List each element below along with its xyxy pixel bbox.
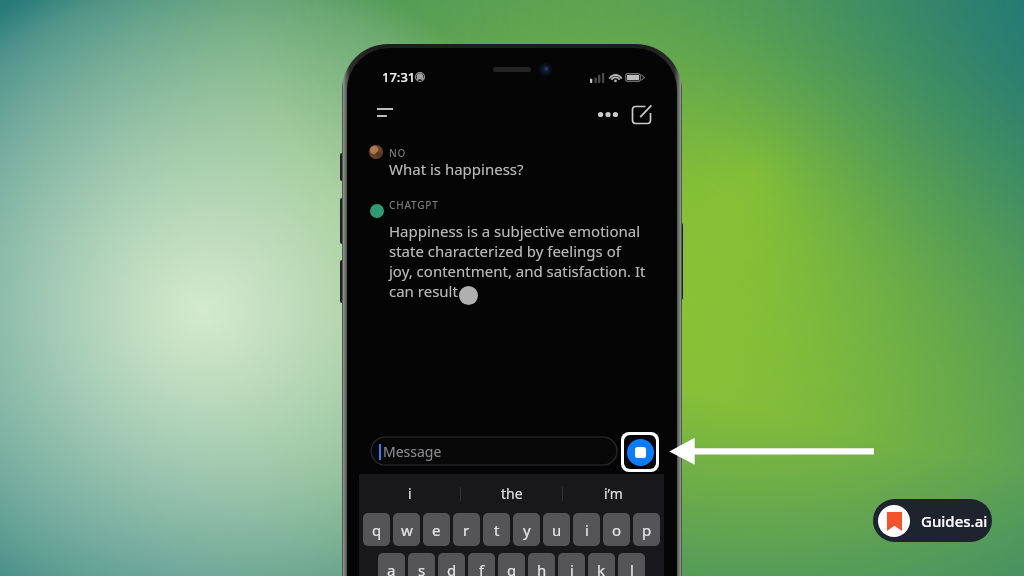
button[interactable]: o — [603, 513, 630, 546]
staticText: the — [501, 484, 523, 503]
button[interactable]: u — [543, 513, 570, 546]
button[interactable]: d — [438, 553, 465, 576]
button[interactable]: s — [408, 553, 435, 576]
staticText: e — [432, 520, 441, 540]
staticText: Guides.ai — [921, 511, 988, 531]
staticText: i — [585, 520, 589, 540]
staticText: can result — [389, 281, 458, 301]
staticText: f — [479, 560, 485, 576]
staticText: i — [408, 484, 412, 503]
button[interactable]: k — [588, 553, 615, 576]
staticText: Happiness is a subjective emotional — [389, 221, 641, 241]
staticText: a — [387, 560, 396, 576]
staticText: state characterized by feelings of — [389, 241, 621, 261]
button[interactable]: e — [423, 513, 450, 546]
staticText: j — [570, 560, 574, 576]
button[interactable]: More options — [594, 102, 622, 126]
staticText: p — [642, 520, 652, 540]
button[interactable]: r — [453, 513, 480, 546]
button[interactable]: j — [558, 553, 585, 576]
staticText: o — [612, 520, 622, 540]
button[interactable]: p — [633, 513, 660, 546]
button[interactable]: i — [359, 474, 460, 513]
staticText: h — [537, 560, 547, 576]
button[interactable]: t — [483, 513, 510, 546]
staticText: NO — [389, 146, 407, 160]
button[interactable]: Guides.ai — [873, 499, 992, 542]
button[interactable]: y — [513, 513, 540, 546]
button[interactable]: New chat — [628, 102, 654, 126]
staticText: g — [507, 560, 517, 576]
staticText: s — [418, 560, 426, 576]
staticText: What is happiness? — [389, 159, 524, 179]
button[interactable]: g — [498, 553, 525, 576]
staticText: d — [447, 560, 457, 576]
staticText: y — [523, 520, 531, 540]
staticText: 17:31 — [382, 68, 416, 86]
button[interactable]: Menu — [372, 101, 398, 123]
button[interactable]: i — [573, 513, 600, 546]
staticText: joy, contentment, and satisfaction. It — [389, 261, 646, 281]
button[interactable]: Message — [371, 437, 617, 465]
button[interactable]: i’m — [563, 474, 664, 513]
staticText: w — [401, 520, 413, 540]
staticText: r — [463, 520, 470, 540]
button[interactable]: l — [618, 553, 645, 576]
button[interactable]: h — [528, 553, 555, 576]
staticText: k — [597, 560, 606, 576]
staticText: Message — [383, 442, 442, 461]
button[interactable]: q — [363, 513, 390, 546]
staticText: q — [372, 520, 382, 540]
staticText: l — [630, 560, 634, 576]
staticText: t — [494, 520, 500, 540]
staticText: CHATGPT — [389, 198, 439, 212]
button[interactable]: f — [468, 553, 495, 576]
staticText: u — [552, 520, 562, 540]
button[interactable]: w — [393, 513, 420, 546]
button[interactable]: a — [378, 553, 405, 576]
staticText: i’m — [604, 484, 623, 503]
button[interactable]: the — [461, 474, 562, 513]
button[interactable]: Stop generating — [624, 435, 656, 469]
